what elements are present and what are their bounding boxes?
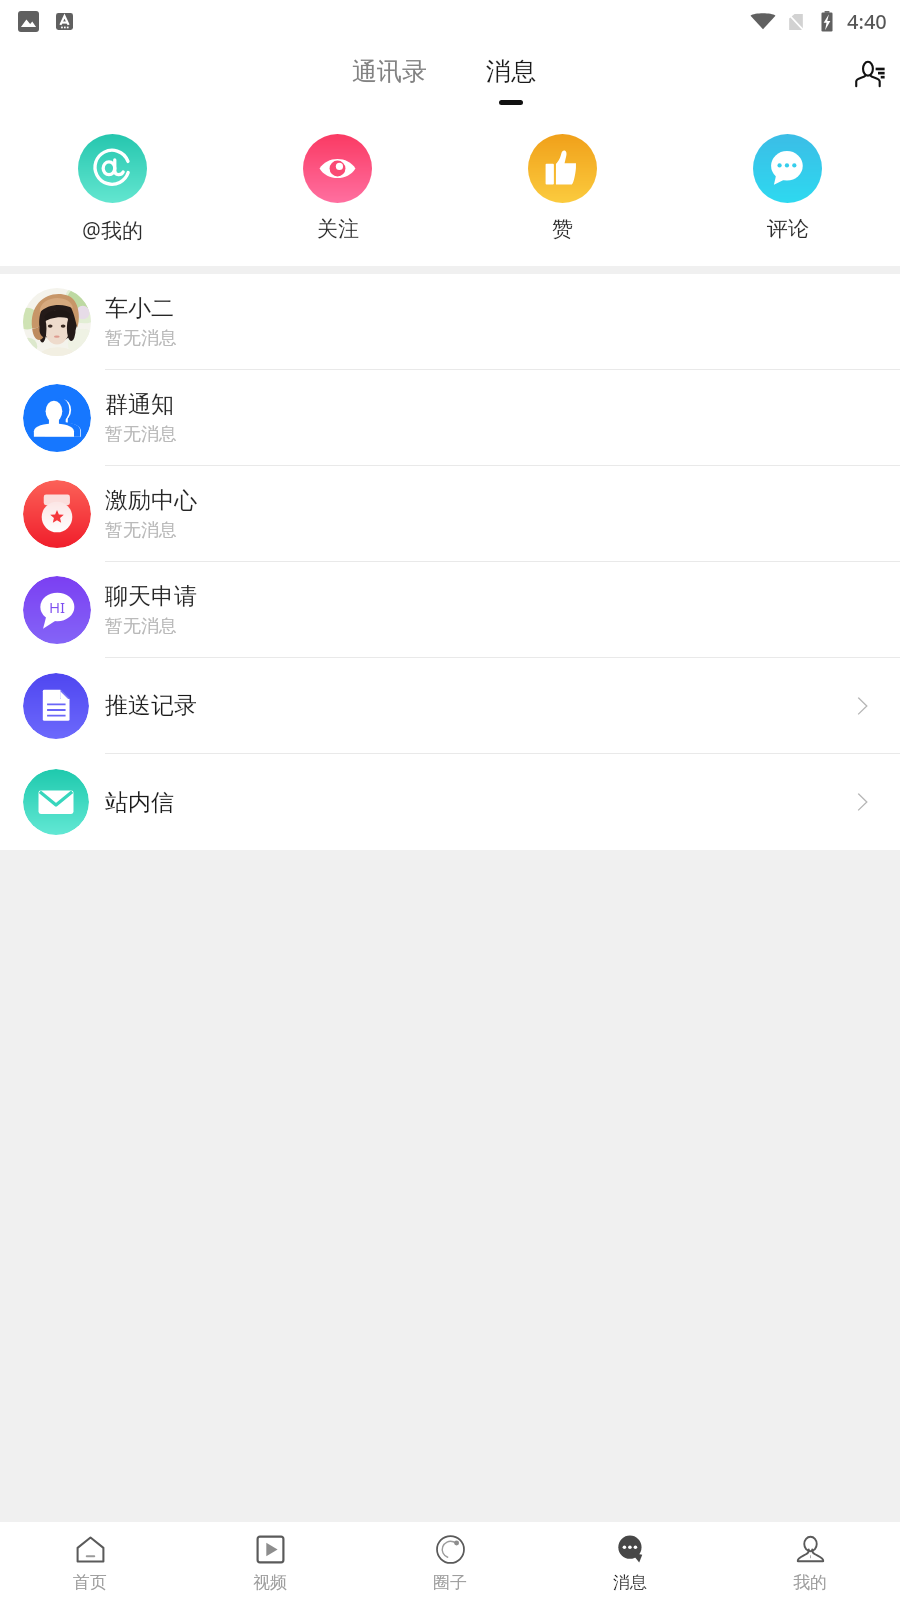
staticText: HI xyxy=(49,597,66,617)
staticText: 消息 xyxy=(486,56,536,87)
button[interactable]: 群通知 xyxy=(0,370,900,465)
button[interactable]: @我的 xyxy=(0,112,225,245)
button[interactable]: Add contact xyxy=(844,48,896,100)
staticText: 消息 xyxy=(613,1572,647,1592)
staticText: 我的 xyxy=(793,1572,827,1592)
staticText: 群通知 xyxy=(105,390,174,419)
staticText: 暂无消息 xyxy=(105,615,177,638)
button[interactable]: 车小二 xyxy=(0,274,900,369)
button[interactable]: 站内信 xyxy=(0,754,900,850)
staticText: 暂无消息 xyxy=(105,519,177,542)
button[interactable]: 圈子 xyxy=(360,1522,540,1600)
staticText: 视频 xyxy=(253,1572,287,1592)
button[interactable]: 视频 xyxy=(180,1522,360,1600)
staticText: 评论 xyxy=(767,216,809,242)
button[interactable]: 消息 xyxy=(540,1522,720,1600)
button[interactable]: 推送记录 xyxy=(0,658,900,753)
button[interactable]: 赞 xyxy=(450,112,675,242)
button[interactable]: 首页 xyxy=(0,1522,180,1600)
button[interactable]: 评论 xyxy=(675,112,900,242)
button[interactable]: 通讯录 xyxy=(338,48,441,95)
button[interactable]: HI xyxy=(0,562,900,657)
staticText: 圈子 xyxy=(433,1572,467,1592)
staticText: 首页 xyxy=(73,1572,107,1592)
button[interactable]: 关注 xyxy=(225,112,450,242)
staticText: 暂无消息 xyxy=(105,423,177,446)
staticText: 推送记录 xyxy=(105,691,197,720)
staticText: 车小二 xyxy=(105,294,174,323)
staticText: 关注 xyxy=(317,216,359,242)
button[interactable]: 我的 xyxy=(720,1522,900,1600)
staticText: 赞 xyxy=(552,216,573,242)
staticText: 聊天申请 xyxy=(105,582,197,611)
button[interactable]: 激励中心 xyxy=(0,466,900,561)
staticText: @我的 xyxy=(82,216,143,245)
button[interactable]: 消息 xyxy=(472,48,550,113)
staticText: 4:40 xyxy=(847,8,887,35)
staticText: 暂无消息 xyxy=(105,327,177,350)
staticText: 站内信 xyxy=(105,788,174,817)
staticText: 激励中心 xyxy=(105,486,197,515)
staticText: 通讯录 xyxy=(352,56,427,87)
